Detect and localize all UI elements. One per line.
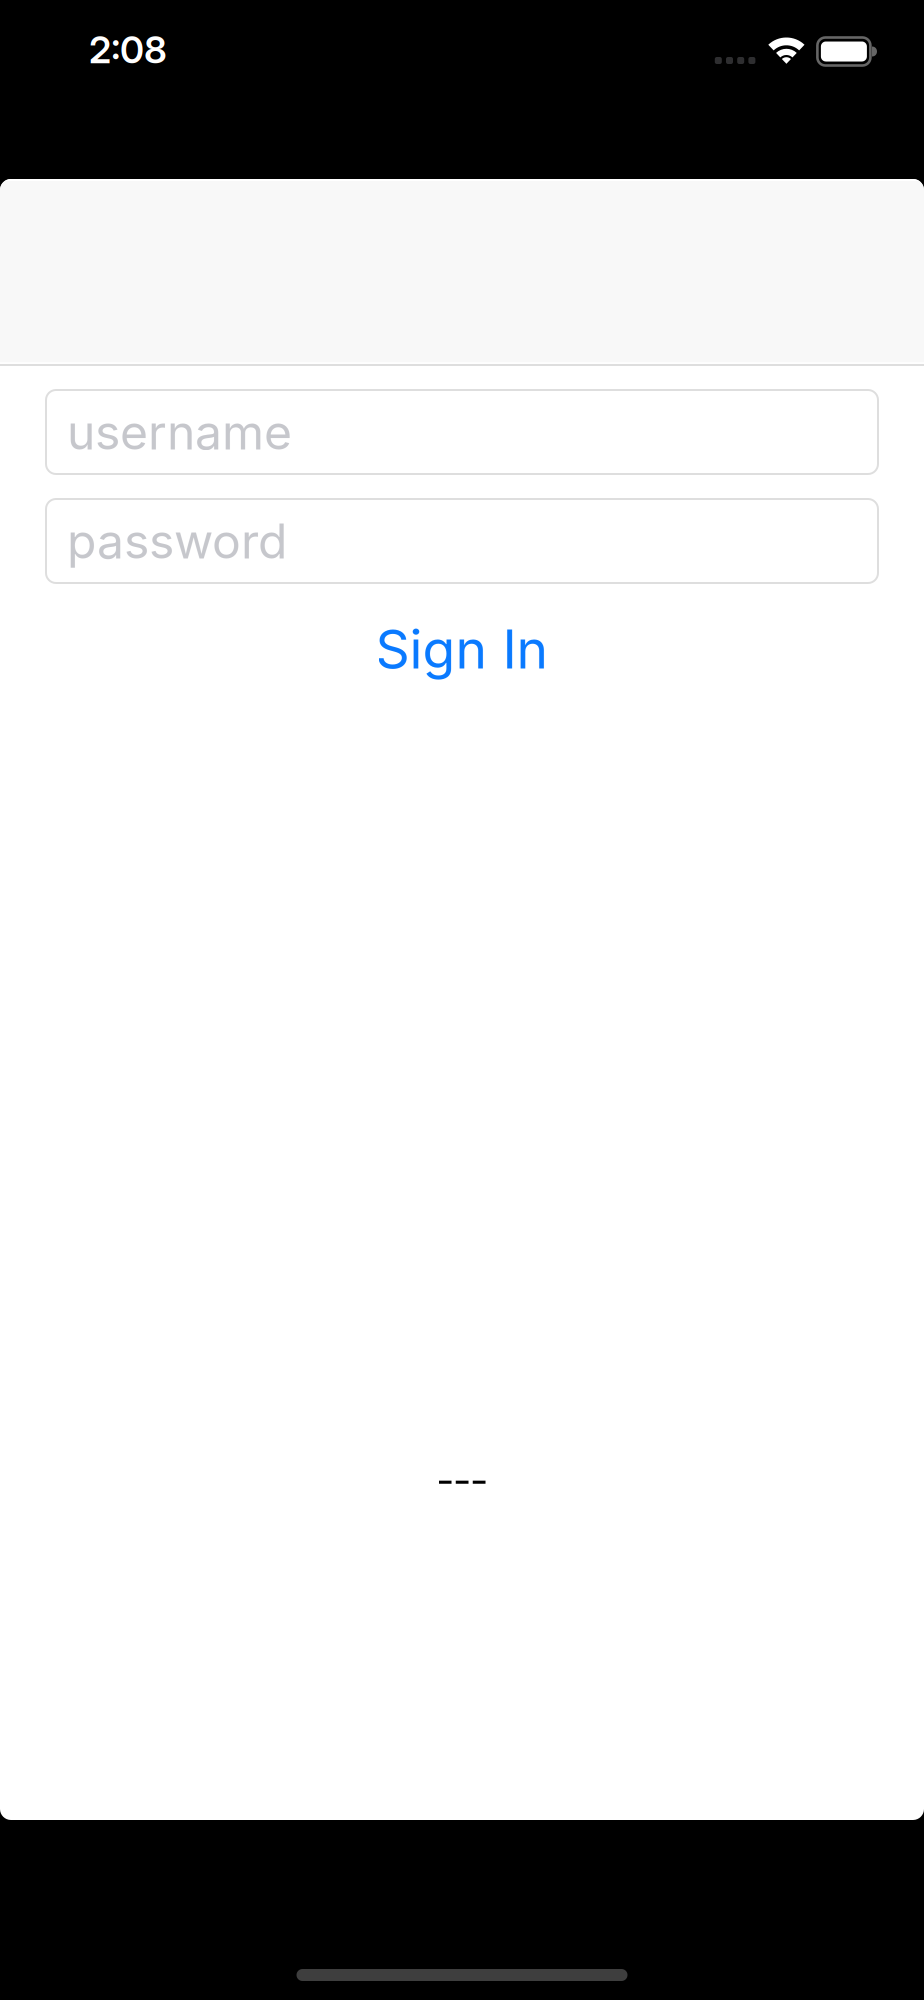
button[interactable]: password [46,499,878,583]
button[interactable]: username [46,390,878,474]
staticText: Sign In [375,617,548,681]
staticText: username [67,403,292,461]
staticText: 2:08 [89,27,167,72]
staticText: password [67,512,287,570]
button[interactable]: Sign In [375,618,548,680]
staticText: --- [436,1455,487,1503]
